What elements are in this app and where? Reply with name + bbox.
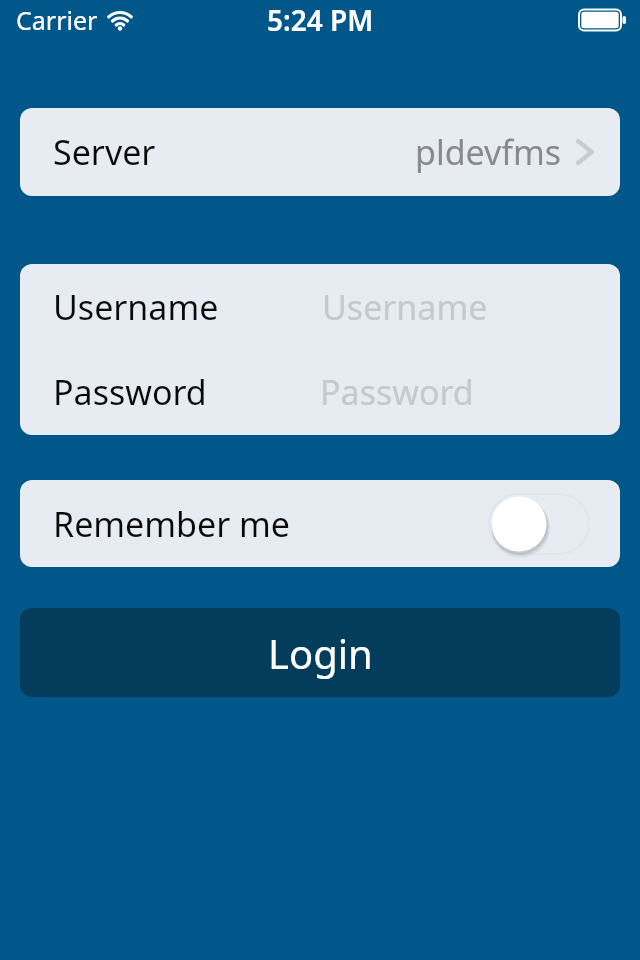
staticText: Username bbox=[53, 284, 219, 330]
button[interactable]: Remember me bbox=[20, 480, 620, 567]
staticText: Remember me bbox=[53, 501, 291, 547]
staticText: Server bbox=[53, 129, 156, 175]
staticText: Login bbox=[268, 626, 373, 680]
button[interactable]: Username bbox=[20, 264, 620, 349]
button[interactable]: Password bbox=[20, 349, 620, 435]
button[interactable]: Server bbox=[20, 108, 620, 196]
staticText: pldevfms bbox=[415, 129, 562, 175]
staticText: 5:24 PM bbox=[267, 1, 374, 39]
staticText: Carrier bbox=[16, 3, 98, 37]
staticText: Password bbox=[320, 369, 474, 415]
staticText: Username bbox=[322, 284, 488, 330]
staticText: Password bbox=[53, 369, 207, 415]
button[interactable]: Login bbox=[20, 608, 620, 697]
